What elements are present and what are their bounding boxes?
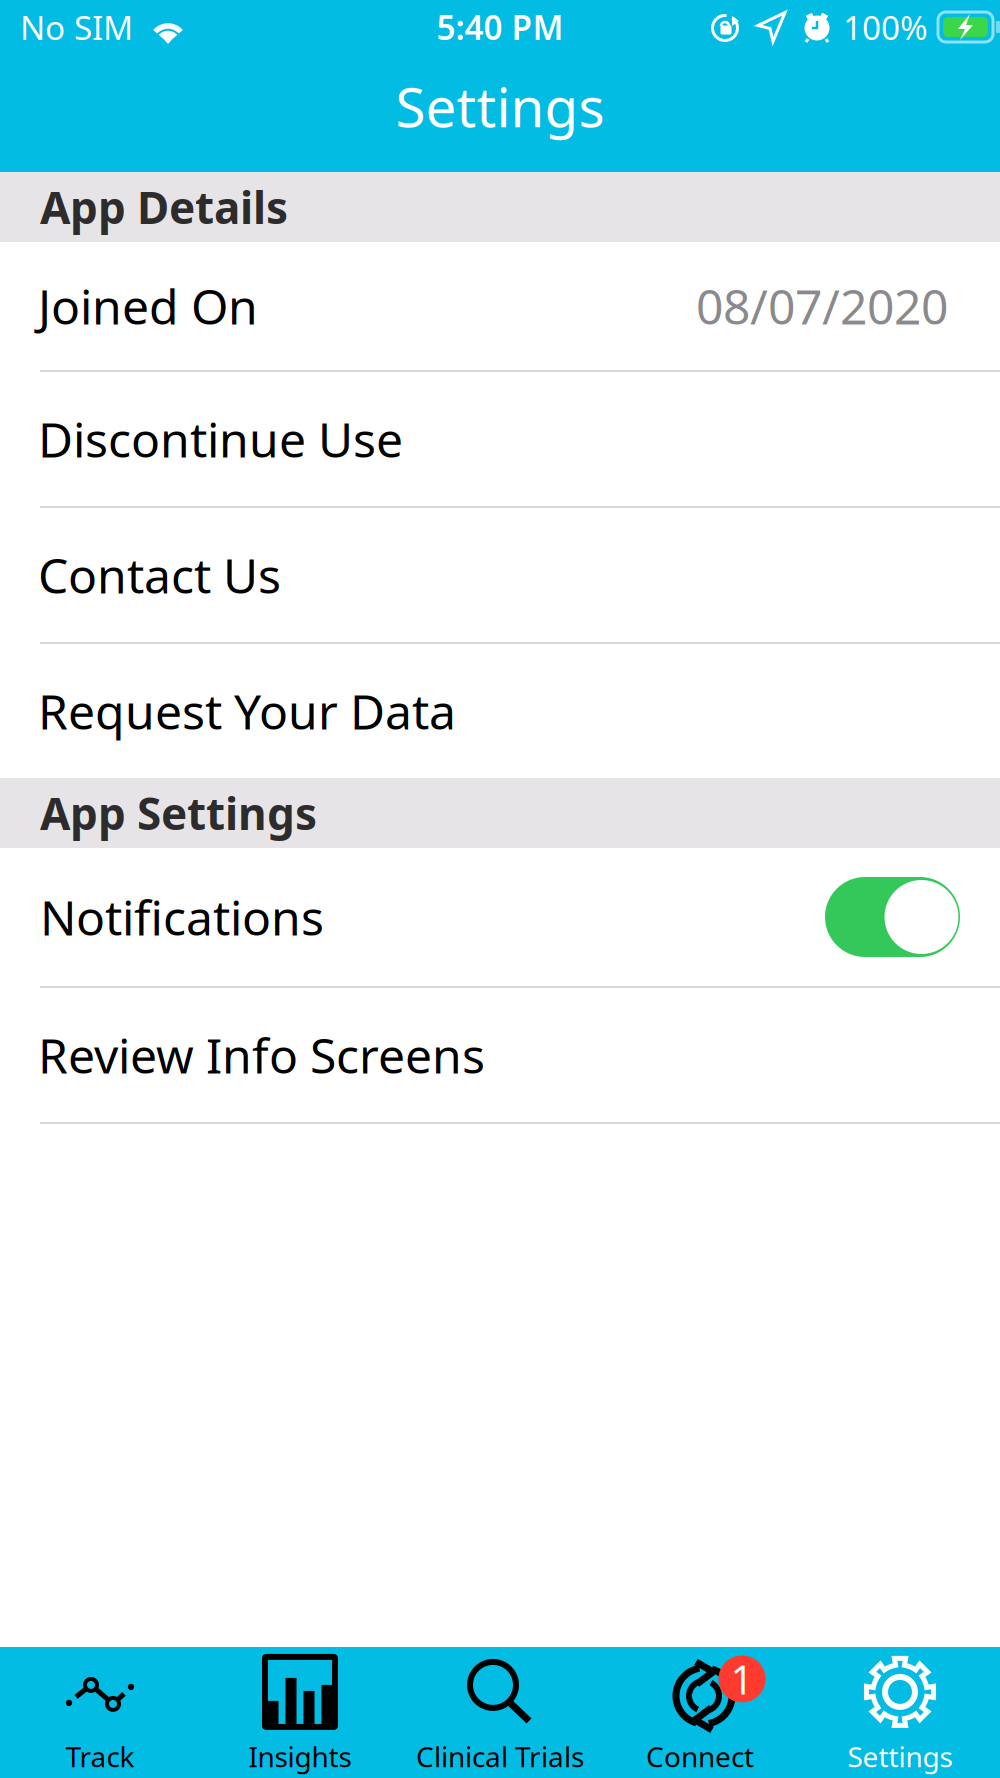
staticText: Settings [847,1738,952,1775]
button[interactable]: Settings [800,1647,1000,1778]
staticText: Notifications [40,885,324,949]
staticText: Review Info Screens [38,1023,485,1087]
staticText: Track [65,1738,134,1775]
staticText: Connect [646,1738,754,1775]
staticText: 100% [843,5,928,49]
staticText: Joined On [38,274,258,338]
staticText: Insights [248,1738,351,1775]
button[interactable]: Clinical Trials [400,1647,600,1778]
staticText: App Settings [40,784,317,842]
staticText: Request Your Data [38,679,456,743]
staticText: Settings [395,70,604,142]
staticText: Discontinue Use [38,407,403,471]
staticText: 5:40 PM [436,5,563,49]
staticText: 1 [730,1652,753,1705]
button[interactable]: 1 [600,1647,800,1778]
button[interactable]: Notifications, on [825,877,960,957]
staticText: Contact Us [38,543,281,607]
staticText: Clinical Trials [416,1738,584,1775]
button[interactable]: Contact Us [0,508,1000,642]
button[interactable]: Request Your Data [0,644,1000,778]
staticText: App Details [40,178,288,236]
button[interactable]: Notifications [0,848,1000,986]
button[interactable]: Discontinue Use [0,372,1000,506]
button[interactable]: Joined On [0,242,1000,370]
button[interactable]: Insights [200,1647,400,1778]
button[interactable]: Track [0,1647,200,1778]
button[interactable]: Review Info Screens [0,988,1000,1122]
staticText: No SIM [20,5,133,49]
staticText: 08/07/2020 [696,274,948,338]
